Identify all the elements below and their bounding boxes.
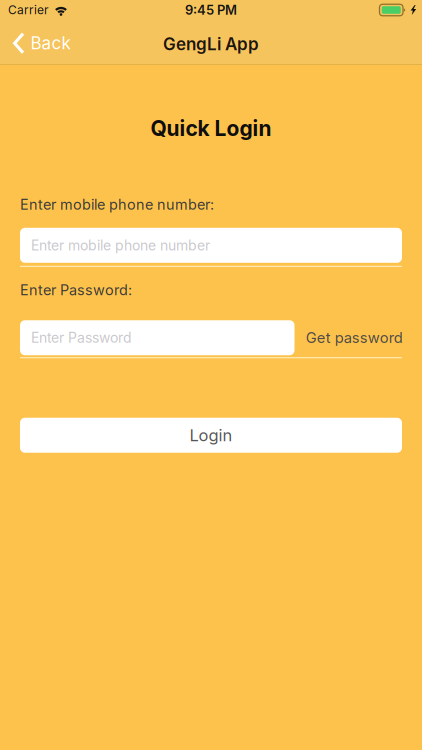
button[interactable]: Get password [302,320,407,355]
staticText: Carrier [8,3,49,17]
button[interactable]: Back [0,20,80,64]
staticText: Enter Password [31,329,132,346]
staticText: Enter mobile phone number [31,237,210,254]
staticText: Back [30,33,70,53]
button[interactable]: Login [20,418,402,453]
staticText: Quick Login [150,116,271,141]
staticText: Enter mobile phone number: [20,196,214,213]
staticText: 9:45 PM [185,2,237,18]
staticText: GengLi App [163,34,259,54]
staticText: Login [189,425,232,445]
staticText: Enter Password: [20,281,132,299]
staticText: Get password [306,329,403,347]
